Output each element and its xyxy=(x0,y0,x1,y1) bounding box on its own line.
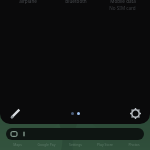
staticText: Maps xyxy=(13,142,22,147)
button[interactable]: Mobile data xyxy=(99,0,146,20)
button[interactable]: Photos xyxy=(119,142,148,147)
button[interactable]: Bluetooth xyxy=(52,0,99,20)
button[interactable]: Play Store xyxy=(90,142,119,147)
button[interactable] xyxy=(6,128,144,140)
button[interactable]: Google Pay xyxy=(32,142,61,147)
staticText: Mobile data xyxy=(110,0,136,4)
button[interactable]: Edit tiles xyxy=(6,104,24,122)
button[interactable]: Settings xyxy=(126,104,144,122)
staticText: No SIM card xyxy=(109,5,136,11)
button[interactable]: airplane xyxy=(4,0,52,20)
staticText: Play Store xyxy=(97,142,113,147)
staticText: Bluetooth xyxy=(65,0,87,4)
staticText: airplane xyxy=(19,0,37,4)
staticText: Google Pay xyxy=(37,142,56,147)
button[interactable]: Settings xyxy=(61,142,90,147)
staticText: Settings xyxy=(69,142,82,147)
staticText: Photos xyxy=(128,142,140,147)
button[interactable]: Maps xyxy=(2,142,32,147)
